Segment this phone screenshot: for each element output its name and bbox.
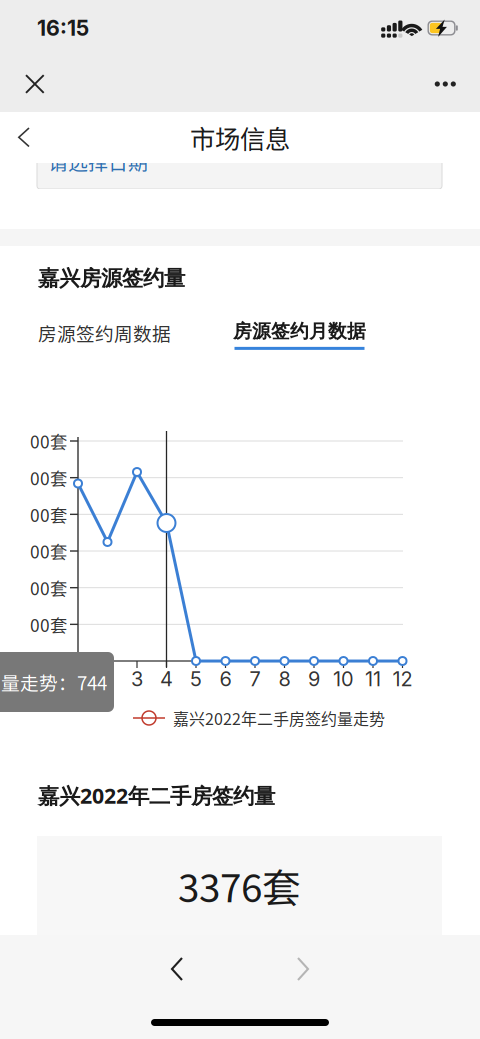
button[interactable]: More [424,63,467,105]
button[interactable]: 请选择日期 [37,151,442,189]
staticText: 0套 [40,648,67,674]
staticText: 00套 [30,612,67,637]
button[interactable]: Forward [278,941,326,997]
button[interactable]: 房源签约月数据 [233,316,366,350]
staticText: 12 [392,667,412,691]
button[interactable]: Close [14,63,56,105]
staticText: 嘉兴房源签约量 [38,265,185,292]
staticText: 9 [308,667,320,691]
staticText: 11 [365,667,381,691]
staticText: 3 [131,667,143,691]
staticText: 1 [74,667,82,691]
staticText: 7 [249,667,260,691]
staticText: 8 [278,667,290,691]
staticText: 00套 [30,502,67,527]
staticText: 3376套 [178,857,301,913]
staticText: 00套 [30,538,67,564]
staticText: 市场信息 [190,119,290,156]
button[interactable]: Back [154,941,202,997]
staticText: 5 [190,667,202,691]
staticText: 4 [160,667,173,691]
staticText: 请选择日期 [48,147,148,176]
button[interactable]: Back [6,115,42,159]
staticText: 16:15 [37,15,89,41]
staticText: 嘉兴2022年二手房签约量走势 [173,706,385,730]
staticText: 嘉兴2022年二手房签约量 [38,781,275,810]
button[interactable]: 房源签约周数据 [38,317,171,348]
staticText: 房源签约月数据 [233,320,366,343]
staticText: 00套 [30,465,67,490]
staticText: 00套 [30,575,67,600]
staticText: 10 [333,667,354,691]
staticText: 2 [101,667,113,691]
staticText: 嘉兴2022年二手房签约量走势：744 [0,668,107,695]
staticText: 房源签约周数据 [38,319,171,346]
staticText: 6 [219,667,231,691]
staticText: 00套 [30,428,67,454]
